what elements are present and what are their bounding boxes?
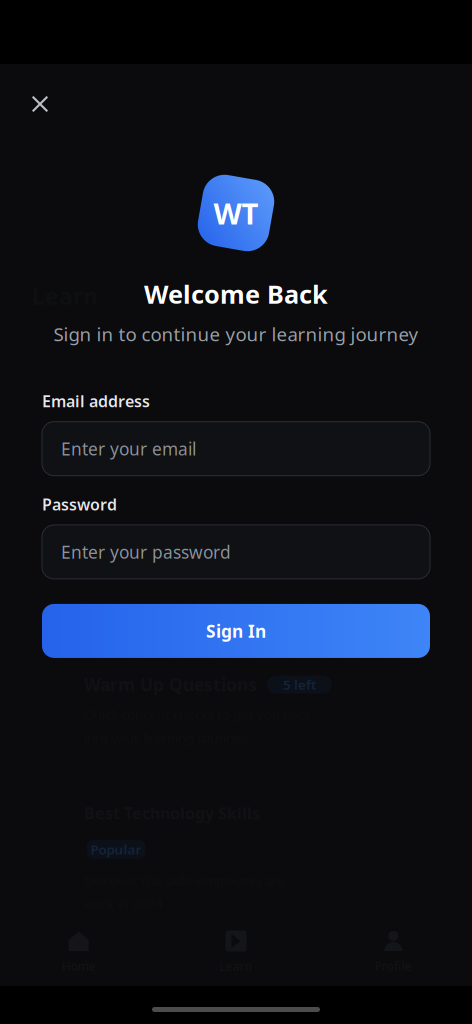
button[interactable]: Sign In	[42, 604, 430, 658]
staticText: Welcome Back	[144, 277, 328, 311]
staticText: Enter your password	[61, 540, 231, 563]
staticText: 5 left	[283, 676, 316, 693]
staticText: Email address	[42, 390, 150, 412]
button[interactable]: Close	[21, 85, 59, 123]
staticText: Sign In	[206, 619, 266, 642]
staticText: WT	[213, 193, 258, 232]
button[interactable]: Enter your email	[42, 422, 430, 476]
staticText: Popular	[90, 840, 141, 858]
staticText: Enter your email	[61, 437, 196, 460]
staticText: Sign in to continue your learning journe…	[53, 322, 418, 346]
staticText: Password	[42, 494, 117, 515]
button[interactable]: Enter your password	[42, 525, 430, 579]
